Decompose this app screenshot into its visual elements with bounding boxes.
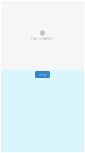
staticText: Page unavailable <box>31 37 54 40</box>
button[interactable]: Retry <box>35 71 50 78</box>
staticText: Retry <box>39 73 46 76</box>
